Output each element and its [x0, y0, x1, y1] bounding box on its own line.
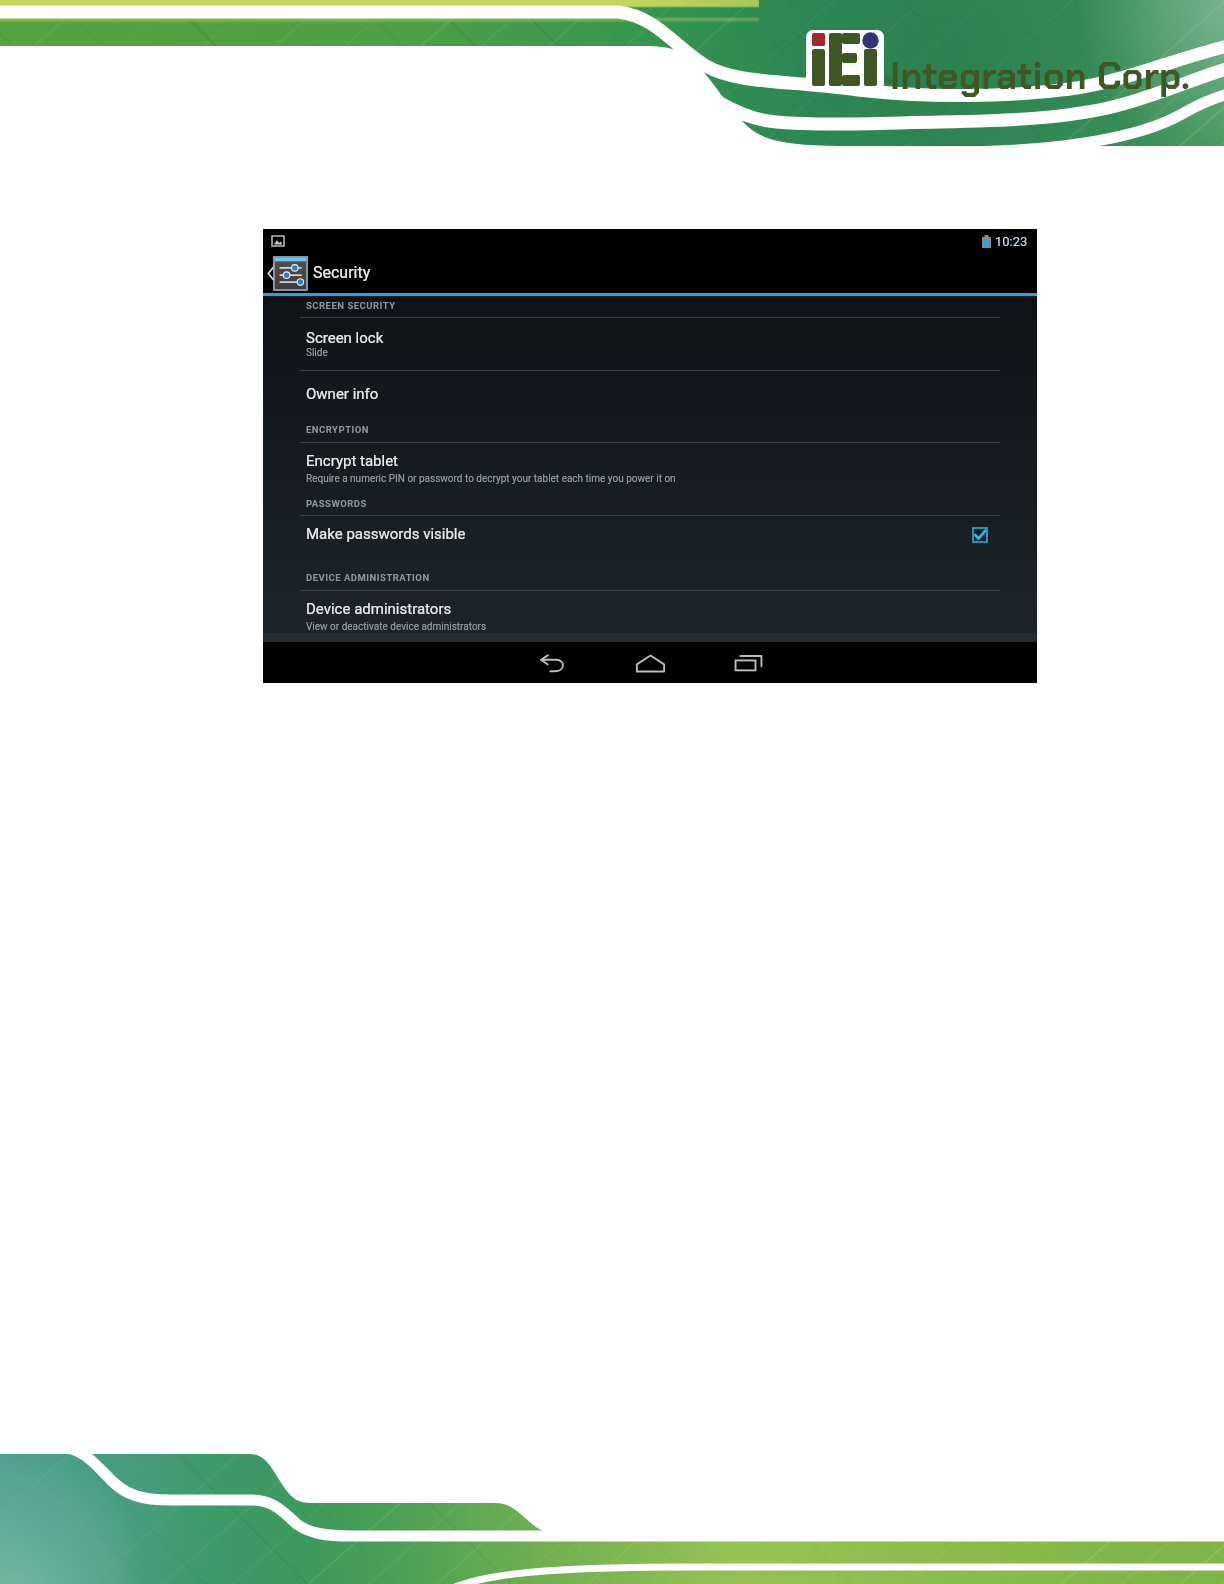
other: Back: [266, 266, 275, 281]
button[interactable]: [263, 323, 1037, 359]
staticText: DEVICE ADMINISTRATION: [306, 572, 430, 583]
staticText: Device administrators: [306, 600, 452, 618]
staticText: Screen lock: [306, 329, 384, 347]
staticText: Make passwords visible: [306, 525, 466, 543]
staticText: View or deactivate device administrators: [306, 621, 487, 633]
button[interactable]: Back: [263, 253, 1037, 293]
staticText: PASSWORDS: [306, 498, 367, 509]
staticText: SCREEN SECURITY: [306, 300, 396, 311]
button[interactable]: [263, 446, 1037, 482]
button[interactable]: Settings: [274, 257, 307, 290]
staticText: ®: [884, 74, 893, 88]
staticText: Require a numeric PIN or password to dec…: [306, 473, 676, 485]
button[interactable]: Back: [526, 646, 580, 679]
staticText: Security: [313, 263, 371, 282]
staticText: Integration Corp.: [890, 52, 1190, 100]
staticText: ENCRYPTION: [306, 424, 370, 435]
button[interactable]: Recent apps: [721, 646, 775, 679]
staticText: Encrypt tablet: [306, 452, 399, 470]
staticText: 10:23: [995, 234, 1028, 249]
button[interactable]: Home: [623, 646, 677, 679]
staticText: Owner info: [306, 385, 379, 403]
staticText: Slide: [306, 347, 328, 359]
button[interactable]: [263, 519, 1037, 545]
button[interactable]: [263, 594, 1037, 630]
button[interactable]: [263, 379, 1037, 405]
